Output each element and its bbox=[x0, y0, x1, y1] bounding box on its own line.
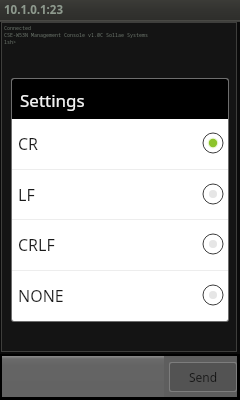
staticText: Send bbox=[189, 369, 218, 385]
button[interactable]: CR bbox=[12, 119, 228, 169]
staticText: CRLF bbox=[18, 234, 202, 256]
staticText: CSE-W53N Management Console v1.0C Sollae… bbox=[4, 32, 149, 39]
button[interactable]: Command input bbox=[2, 356, 164, 397]
button[interactable]: Send bbox=[170, 363, 236, 391]
button[interactable]: LF bbox=[12, 170, 228, 219]
button[interactable]: NONE bbox=[12, 271, 228, 321]
staticText: Settings bbox=[20, 89, 85, 112]
staticText: lsh> bbox=[4, 39, 17, 46]
staticText: LF bbox=[18, 184, 202, 206]
button[interactable]: CRLF bbox=[12, 220, 228, 270]
staticText: Connected bbox=[4, 25, 32, 32]
staticText: 10.1.0.1:23 bbox=[4, 2, 63, 18]
staticText: NONE bbox=[18, 285, 202, 307]
staticText: CR bbox=[18, 133, 202, 155]
